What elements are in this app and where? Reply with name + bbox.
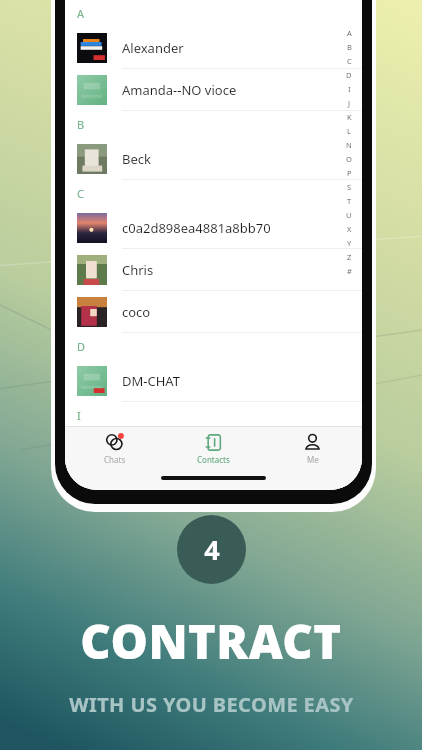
staticText: # [347, 266, 352, 276]
button[interactable]: Amanda--NO vioce [65, 69, 362, 111]
staticText: ikun [122, 441, 149, 459]
staticText: Beck [122, 150, 151, 168]
staticText: B [347, 42, 352, 52]
staticText: C [347, 56, 352, 66]
button[interactable]: Chris [65, 249, 362, 291]
staticText: U [346, 210, 352, 220]
staticText: J [77, 473, 81, 488]
staticText: C [77, 186, 84, 201]
button[interactable]: Chats [65, 427, 164, 470]
button[interactable]: coco [65, 291, 362, 333]
staticText: CONTRACT [80, 609, 342, 673]
staticText: Y [347, 238, 352, 248]
staticText: D [77, 339, 86, 354]
button[interactable]: Contacts [164, 427, 263, 470]
staticText: K [347, 112, 352, 122]
staticText: N [346, 140, 352, 150]
staticText: I [77, 408, 81, 423]
staticText: Contacts [197, 454, 230, 465]
staticText: WITH US YOU BECOME EASY [69, 691, 354, 718]
staticText: A [77, 6, 85, 21]
staticText: D [346, 70, 352, 80]
staticText: Amanda--NO vioce [122, 81, 237, 99]
staticText: Chris [122, 261, 154, 279]
button[interactable]: Alexander [65, 27, 362, 69]
staticText: coco [122, 303, 151, 321]
staticText: O [346, 154, 352, 164]
staticText: DM-CHAT [122, 372, 180, 390]
button[interactable]: ikun [65, 429, 362, 471]
staticText: c0a2d898ea4881a8bb70 [122, 219, 271, 237]
button[interactable]: Beck [65, 138, 362, 180]
staticText: Chats [104, 454, 126, 465]
staticText: X [347, 224, 352, 234]
staticText: A [347, 28, 352, 38]
staticText: 4 [204, 531, 220, 568]
staticText: P [347, 168, 352, 178]
staticText: L [347, 126, 351, 136]
staticText: T [347, 196, 352, 206]
staticText: Me [307, 454, 319, 465]
staticText: Alexander [122, 39, 184, 57]
staticText: Z [347, 252, 352, 262]
button[interactable]: c0a2d898ea4881a8bb70 [65, 207, 362, 249]
staticText: J [348, 98, 351, 108]
staticText: I [348, 84, 351, 94]
staticText: S [347, 182, 352, 192]
button[interactable]: Me [263, 427, 362, 470]
button[interactable]: DM-CHAT [65, 360, 362, 402]
staticText: B [77, 117, 85, 132]
